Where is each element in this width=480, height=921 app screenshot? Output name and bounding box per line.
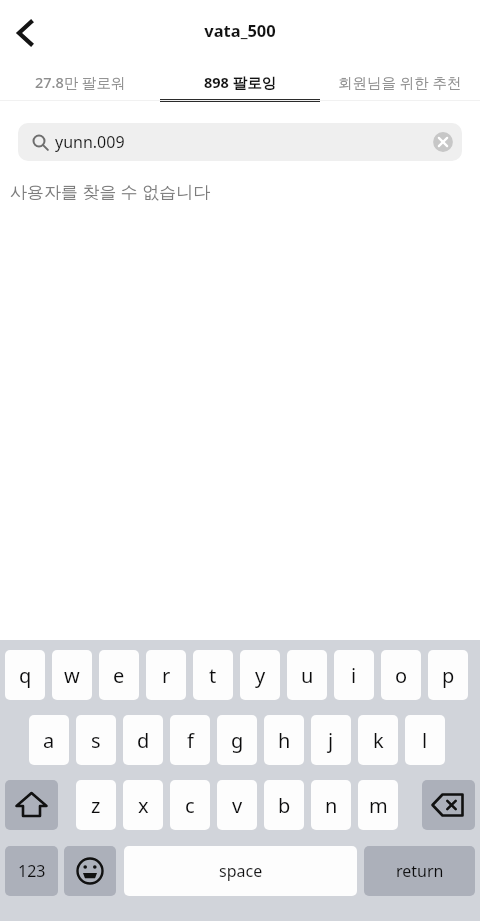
button[interactable]: space <box>124 846 357 896</box>
button[interactable]: m <box>358 780 398 830</box>
staticText: k <box>373 727 384 754</box>
staticText: x <box>138 792 149 819</box>
button[interactable]: z <box>76 780 116 830</box>
staticText: f <box>187 727 194 754</box>
staticText: a <box>43 727 55 754</box>
staticText: o <box>395 662 408 689</box>
button[interactable]: r <box>146 650 186 700</box>
button[interactable]: 27.8만 팔로워 <box>0 62 160 101</box>
button[interactable]: v <box>217 780 257 830</box>
staticText: j <box>328 727 334 754</box>
button[interactable]: u <box>287 650 327 700</box>
button[interactable]: yunn.009 <box>18 123 462 161</box>
button[interactable]: Back <box>4 12 46 54</box>
button[interactable]: p <box>428 650 468 700</box>
staticText: q <box>19 662 32 689</box>
button[interactable]: 회원님을 위한 추천 <box>320 62 480 101</box>
staticText: v <box>232 792 243 819</box>
staticText: 27.8만 팔로워 <box>35 72 126 92</box>
staticText: m <box>369 792 388 819</box>
staticText: w <box>64 662 80 689</box>
staticText: g <box>231 727 244 754</box>
staticText: h <box>278 727 291 754</box>
staticText: e <box>113 662 125 689</box>
button[interactable]: f <box>170 715 210 765</box>
button[interactable]: k <box>358 715 398 765</box>
staticText: 898 팔로잉 <box>204 72 277 92</box>
button[interactable]: Shift <box>5 780 58 830</box>
button[interactable]: Backspace <box>422 780 475 830</box>
staticText: return <box>396 860 444 882</box>
staticText: z <box>91 792 101 819</box>
button[interactable]: w <box>52 650 92 700</box>
staticText: d <box>137 727 150 754</box>
button[interactable]: Clear text <box>430 129 456 155</box>
staticText: y <box>255 662 266 689</box>
button[interactable]: b <box>264 780 304 830</box>
staticText: b <box>278 792 291 819</box>
staticText: yunn.009 <box>55 131 125 153</box>
button[interactable]: n <box>311 780 351 830</box>
staticText: t <box>209 662 217 689</box>
staticText: n <box>325 792 338 819</box>
button[interactable]: h <box>264 715 304 765</box>
staticText: 사용자를 찾을 수 없습니다 <box>10 180 211 203</box>
button[interactable]: x <box>123 780 163 830</box>
staticText: s <box>91 727 101 754</box>
staticText: i <box>351 662 357 689</box>
button[interactable]: return <box>364 846 475 896</box>
button[interactable]: Emoji <box>64 846 116 896</box>
staticText: 회원님을 위한 추천 <box>338 72 462 92</box>
button[interactable]: c <box>170 780 210 830</box>
staticText: l <box>422 727 428 754</box>
button[interactable]: a <box>29 715 69 765</box>
staticText: p <box>442 662 455 689</box>
button[interactable]: g <box>217 715 257 765</box>
button[interactable]: q <box>5 650 45 700</box>
staticText: u <box>301 662 314 689</box>
staticText: r <box>162 662 171 689</box>
button[interactable]: y <box>240 650 280 700</box>
button[interactable]: o <box>381 650 421 700</box>
button[interactable]: i <box>334 650 374 700</box>
button[interactable]: e <box>99 650 139 700</box>
staticText: c <box>185 792 195 819</box>
button[interactable]: j <box>311 715 351 765</box>
staticText: space <box>219 860 263 882</box>
button[interactable]: 898 팔로잉 <box>160 62 320 101</box>
button[interactable]: t <box>193 650 233 700</box>
button[interactable]: d <box>123 715 163 765</box>
button[interactable]: s <box>76 715 116 765</box>
button[interactable]: 123 <box>5 846 58 896</box>
button[interactable]: l <box>405 715 445 765</box>
staticText: 123 <box>18 860 46 882</box>
staticText: vata_500 <box>0 19 480 41</box>
